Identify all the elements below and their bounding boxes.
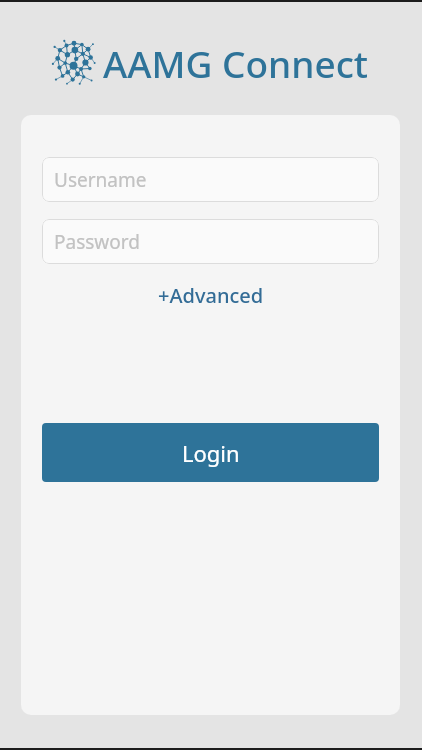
staticText: Username: [54, 167, 147, 193]
staticText: +Advanced: [158, 282, 264, 309]
staticText: Password: [54, 229, 140, 255]
button[interactable]: Password: [42, 219, 379, 264]
button[interactable]: +Advanced: [148, 276, 274, 315]
button[interactable]: Username: [42, 157, 379, 202]
staticText: Login: [182, 438, 240, 468]
staticText: AAMG Connect: [103, 38, 369, 88]
button[interactable]: Login: [42, 423, 379, 482]
other: AAMG Connect logo: [52, 40, 96, 86]
